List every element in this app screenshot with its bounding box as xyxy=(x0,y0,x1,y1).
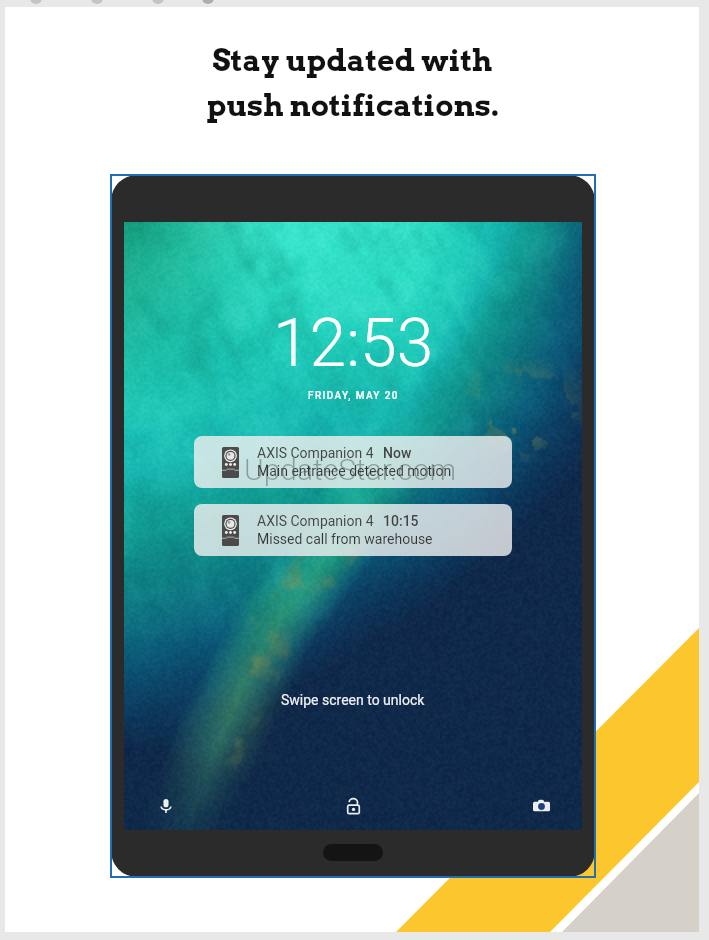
button[interactable]: AXIS Companion 4 xyxy=(194,436,512,488)
staticText: Missed call from warehouse xyxy=(257,531,433,547)
button[interactable]: Voice assist xyxy=(151,791,181,821)
staticText: 10:15 xyxy=(383,513,419,529)
staticText: UpdateStar.com xyxy=(244,452,457,487)
staticText: Stay updated with push notifications. xyxy=(206,42,499,123)
staticText: Main entrance detected motion xyxy=(257,463,452,479)
button[interactable]: Camera xyxy=(526,791,556,821)
staticText: AXIS Companion 4 xyxy=(257,445,374,461)
staticText: 12:53 xyxy=(273,305,434,382)
staticText: FRIDAY, MAY 20 xyxy=(308,390,399,402)
button[interactable]: AXIS Companion 4 xyxy=(194,504,512,556)
button[interactable]: Unlock xyxy=(338,791,368,821)
staticText: Swipe screen to unlock xyxy=(281,692,425,708)
staticText: Now xyxy=(383,445,412,461)
staticText: AXIS Companion 4 xyxy=(257,513,374,529)
